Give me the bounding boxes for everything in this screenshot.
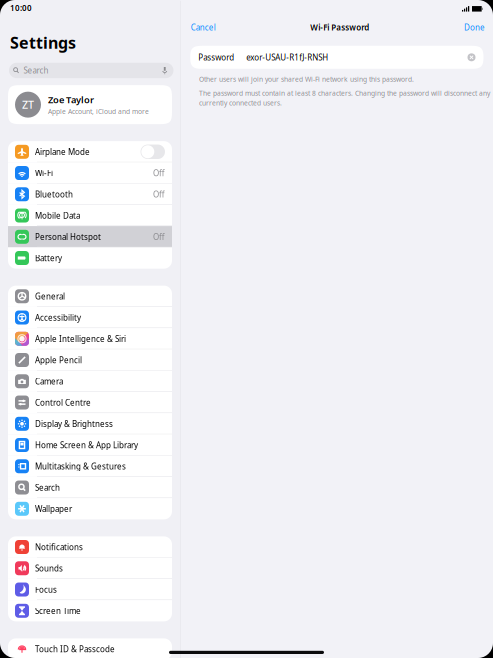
- staticText: Wi-Fi: [35, 168, 53, 178]
- staticText: Sounds: [35, 563, 63, 574]
- staticText: Focus: [35, 584, 57, 595]
- button[interactable]: General: [8, 286, 172, 307]
- button[interactable]: ZT: [0, 85, 180, 124]
- staticText: Search: [23, 65, 48, 76]
- staticText: Personal Hotspot: [35, 231, 101, 242]
- button[interactable]: Apple Pencil: [8, 349, 172, 371]
- staticText: Wallpaper: [35, 503, 72, 514]
- button[interactable]: Battery: [8, 247, 172, 269]
- staticText: Cancel: [191, 22, 216, 33]
- staticText: Bluetooth: [35, 189, 73, 200]
- staticText: Mobile Data: [35, 210, 80, 221]
- button[interactable]: Control Centre: [8, 392, 172, 413]
- button[interactable]: Search: [8, 477, 172, 498]
- staticText: Off: [153, 168, 165, 178]
- staticText: Apple Account, iCloud and more: [48, 107, 149, 116]
- staticText: Airplane Mode: [35, 146, 90, 157]
- button[interactable]: Bluetooth: [8, 184, 172, 205]
- staticText: General: [35, 291, 65, 302]
- button[interactable]: Wi-Fi: [8, 162, 172, 184]
- staticText: Off: [153, 189, 165, 200]
- staticText: Other users will join your shared Wi-Fi …: [199, 75, 414, 84]
- staticText: Apple Pencil: [35, 355, 82, 365]
- staticText: Home Screen & App Library: [35, 440, 138, 450]
- staticText: Password: [198, 52, 234, 63]
- staticText: exor-USAU-R1fJ-RNSH: [246, 52, 328, 63]
- button[interactable]: Screen Time: [8, 600, 172, 621]
- staticText: Multitasking & Gestures: [35, 461, 126, 472]
- staticText: Battery: [35, 253, 62, 263]
- staticText: Notifications: [35, 542, 83, 552]
- staticText: currently connected users.: [199, 98, 282, 107]
- button[interactable]: Airplane Mode: [8, 141, 172, 162]
- button[interactable]: Wallpaper: [8, 498, 172, 519]
- button[interactable]: Sounds: [8, 558, 172, 579]
- button[interactable]: Search: [0, 63, 180, 85]
- staticText: Zoe Taylor: [48, 93, 94, 106]
- button[interactable]: Personal Hotspot: [8, 226, 172, 247]
- staticText: Touch ID & Passcode: [35, 644, 115, 654]
- button[interactable]: Camera: [8, 371, 172, 392]
- button[interactable]: Home Screen & App Library: [8, 434, 172, 456]
- staticText: ZT: [22, 98, 34, 112]
- button[interactable]: Multitasking & Gestures: [8, 456, 172, 477]
- staticText: Screen Time: [35, 605, 81, 616]
- button[interactable]: Mobile Data: [8, 205, 172, 226]
- staticText: Off: [153, 231, 165, 242]
- button[interactable]: Apple Intelligence & Siri: [8, 328, 172, 349]
- staticText: Control Centre: [35, 397, 91, 408]
- button[interactable]: Display & Brightness: [8, 413, 172, 434]
- button[interactable]: Notifications: [8, 536, 172, 558]
- button[interactable]: Touch ID & Passcode: [8, 638, 172, 658]
- button[interactable]: Cancel: [191, 22, 216, 33]
- button[interactable]: Accessibility: [8, 307, 172, 328]
- staticText: Wi-Fi Password: [310, 22, 369, 33]
- staticText: Settings: [10, 32, 76, 53]
- staticText: Camera: [35, 376, 63, 387]
- button[interactable]: Focus: [8, 579, 172, 600]
- staticText: Apple Intelligence & Siri: [35, 333, 126, 344]
- button[interactable]: Done: [464, 22, 485, 33]
- staticText: The password must contain at least 8 cha…: [199, 89, 490, 98]
- staticText: Done: [464, 22, 485, 33]
- staticText: 10:00: [10, 3, 32, 13]
- staticText: Search: [35, 482, 60, 493]
- button[interactable]: Clear text: [467, 53, 475, 61]
- staticText: Display & Brightness: [35, 418, 113, 429]
- staticText: Accessibility: [35, 312, 81, 323]
